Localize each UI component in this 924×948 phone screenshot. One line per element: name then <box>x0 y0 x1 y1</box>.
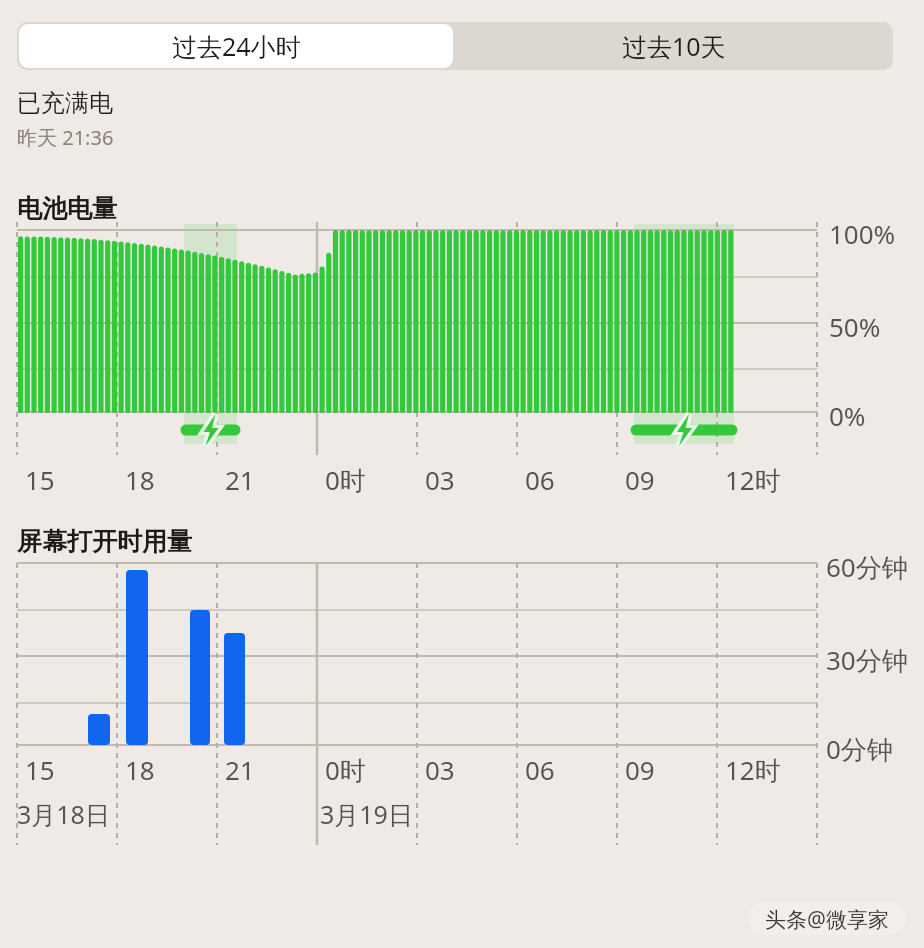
staticText: 15 <box>25 462 55 497</box>
staticText: 06 <box>525 462 555 497</box>
staticText: 18 <box>125 752 155 787</box>
staticText: 15 <box>25 752 55 787</box>
staticText: 屏幕打开时用量 <box>17 526 192 557</box>
staticText: 过去10天 <box>622 29 726 63</box>
staticText: 0% <box>829 398 866 433</box>
staticText: 09 <box>625 752 655 787</box>
staticText: 21 <box>225 462 255 497</box>
staticText: 06 <box>525 752 555 787</box>
staticText: 50% <box>829 309 881 344</box>
staticText: 0时 <box>325 752 366 788</box>
staticText: 03 <box>425 752 455 787</box>
staticText: 3月18日 <box>17 797 110 831</box>
staticText: 12时 <box>725 462 781 498</box>
staticText: 电池电量 <box>17 193 117 224</box>
staticText: 3月19日 <box>320 797 413 831</box>
staticText: 头条@微享家 <box>765 905 889 934</box>
staticText: 过去24小时 <box>172 29 301 63</box>
staticText: 100% <box>829 216 896 251</box>
staticText: 18 <box>125 462 155 497</box>
staticText: 0分钟 <box>826 731 893 767</box>
staticText: 已充满电 <box>17 88 113 118</box>
staticText: 60分钟 <box>826 549 908 585</box>
staticText: 0时 <box>325 462 366 498</box>
button[interactable]: 过去24小时 <box>19 24 453 68</box>
staticText: 30分钟 <box>826 642 908 678</box>
staticText: 21 <box>225 752 255 787</box>
staticText: 09 <box>625 462 655 497</box>
staticText: 12时 <box>725 752 781 788</box>
staticText: 昨天 21:36 <box>17 124 114 151</box>
staticText: 03 <box>425 462 455 497</box>
button[interactable]: 过去10天 <box>457 24 891 68</box>
